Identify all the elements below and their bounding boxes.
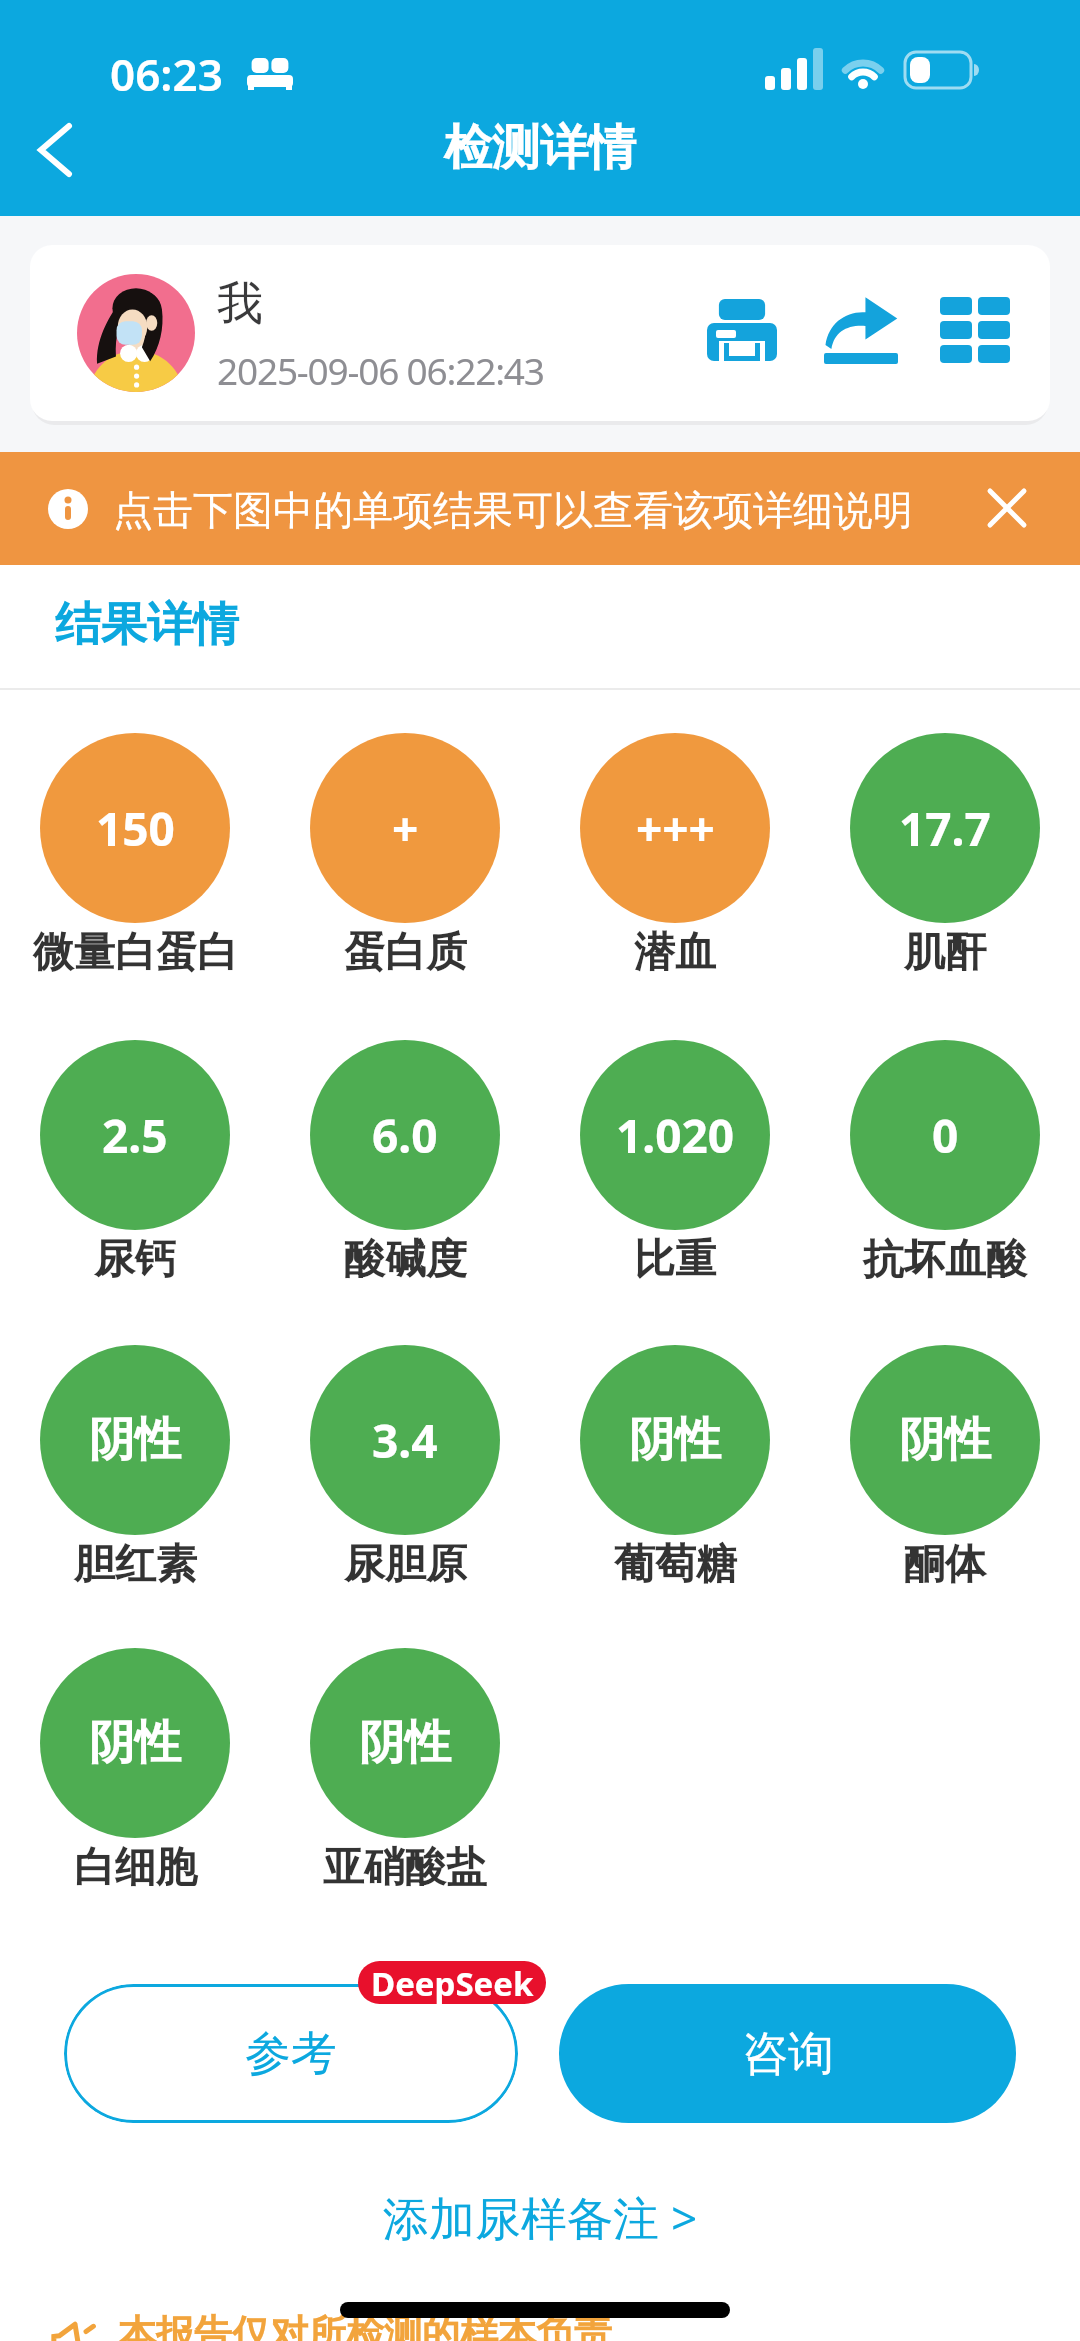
button[interactable]: 咨询 <box>559 1984 1016 2123</box>
staticText: 点击下图中的单项结果可以查看该项详细说明 <box>113 485 913 535</box>
staticText: 150 <box>96 797 175 860</box>
staticText: 潜血 <box>634 927 716 979</box>
button[interactable] <box>972 480 1042 536</box>
button[interactable]: 阴性 <box>580 1345 770 1535</box>
button[interactable]: +++ <box>580 733 770 923</box>
button[interactable]: 阴性 <box>310 1648 500 1838</box>
staticText: DeepSeek <box>371 1961 534 2004</box>
button[interactable]: 阴性 <box>40 1648 230 1838</box>
staticText: 蛋白质 <box>344 927 467 979</box>
button[interactable] <box>923 290 1027 370</box>
button[interactable]: 1.020 <box>580 1040 770 1230</box>
staticText: 2.5 <box>102 1104 168 1167</box>
staticText: 阴性 <box>89 1714 181 1772</box>
staticText: 肌酐 <box>904 927 986 979</box>
staticText: 2025-09-06 06:22:43 <box>217 345 544 395</box>
staticText: 17.7 <box>899 797 991 860</box>
button[interactable]: 阴性 <box>40 1345 230 1535</box>
staticText: 我 <box>217 275 263 333</box>
staticText: +++ <box>636 797 715 860</box>
staticText: 微量白蛋白 <box>33 927 238 979</box>
staticText: 尿钙 <box>94 1234 176 1286</box>
staticText: 白细胞 <box>74 1842 197 1894</box>
staticText: 葡萄糖 <box>614 1539 737 1591</box>
staticText: 咨询 <box>742 2025 834 2083</box>
button[interactable]: 6.0 <box>310 1040 500 1230</box>
staticText: 阴性 <box>899 1411 991 1469</box>
staticText: 6.0 <box>372 1104 438 1167</box>
staticText: 酸碱度 <box>344 1234 467 1286</box>
staticText: + <box>392 797 419 860</box>
button[interactable]: 2.5 <box>40 1040 230 1230</box>
staticText: 结果详情 <box>55 596 239 654</box>
button[interactable] <box>690 290 794 370</box>
staticText: 酮体 <box>904 1539 986 1591</box>
button[interactable]: 3.4 <box>310 1345 500 1535</box>
button[interactable]: 参考 <box>64 1984 518 2123</box>
staticText: 阴性 <box>359 1714 451 1772</box>
staticText: 本报告仅对所检测的样本负责 <box>118 2310 612 2341</box>
staticText: 尿胆原 <box>344 1539 467 1591</box>
staticText: 阴性 <box>629 1411 721 1469</box>
staticText: 添加尿样备注 > <box>383 2186 698 2249</box>
staticText: 3.4 <box>372 1409 438 1472</box>
button[interactable]: 阴性 <box>850 1345 1040 1535</box>
button[interactable] <box>20 110 90 190</box>
staticText: 阴性 <box>89 1411 181 1469</box>
button[interactable]: 我 <box>30 245 1050 421</box>
staticText: 06:23 <box>110 44 223 104</box>
staticText: 0 <box>932 1104 959 1167</box>
staticText: 抗坏血酸 <box>863 1234 1027 1286</box>
staticText: 1.020 <box>616 1104 735 1167</box>
button[interactable]: 17.7 <box>850 733 1040 923</box>
staticText: 胆红素 <box>74 1539 197 1591</box>
staticText: 参考 <box>245 2025 337 2083</box>
staticText: 亚硝酸盐 <box>323 1842 487 1894</box>
button[interactable]: 0 <box>850 1040 1040 1230</box>
staticText: 比重 <box>634 1234 716 1286</box>
button[interactable] <box>805 290 917 370</box>
staticText: 检测详情 <box>0 118 1080 178</box>
button[interactable]: 150 <box>40 733 230 923</box>
button[interactable]: + <box>310 733 500 923</box>
button[interactable]: 添加尿样备注 > <box>0 2186 1080 2249</box>
